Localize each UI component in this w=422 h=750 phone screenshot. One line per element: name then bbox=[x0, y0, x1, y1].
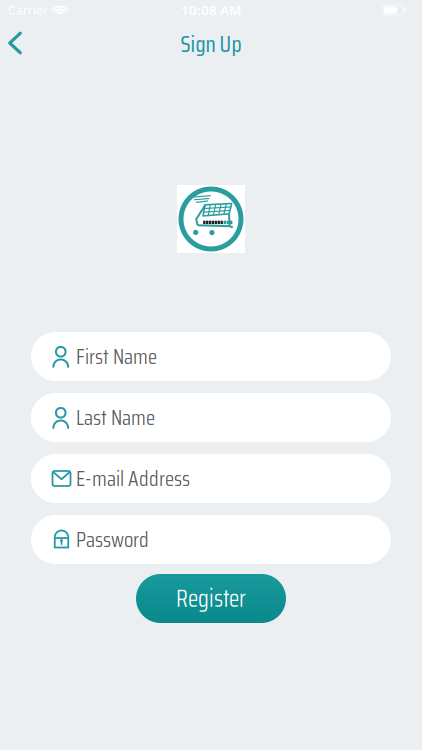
staticText: 10:08 AM bbox=[181, 1, 241, 19]
staticText: Last Name bbox=[76, 401, 155, 434]
staticText: E-mail Address bbox=[76, 462, 190, 495]
staticText: Sign Up bbox=[180, 26, 241, 62]
staticText: Register bbox=[176, 580, 246, 617]
staticText: Carrier bbox=[8, 2, 48, 18]
staticText: First Name bbox=[76, 340, 157, 373]
staticText: Password bbox=[76, 523, 149, 556]
